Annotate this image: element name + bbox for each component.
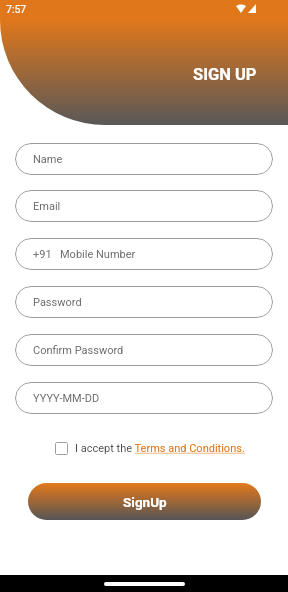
staticText: SignUp [123, 494, 167, 510]
button[interactable]: Accept terms checkbox [55, 442, 68, 455]
button[interactable]: Name [15, 143, 273, 175]
staticText: Password [33, 296, 82, 309]
staticText: +91 [33, 248, 52, 261]
button[interactable]: Email [15, 190, 273, 222]
staticText: Email [33, 200, 61, 213]
button[interactable]: Password [15, 286, 273, 318]
staticText: Mobile Number [60, 248, 136, 261]
staticText: 7:57 [6, 3, 27, 15]
button[interactable]: SignUp [28, 483, 261, 520]
button[interactable]: Confirm Password [15, 334, 273, 366]
staticText: SIGN UP [193, 65, 257, 84]
staticText: YYYY-MM-DD [33, 392, 100, 405]
staticText: Confirm Password [33, 344, 124, 357]
staticText: Name [33, 153, 63, 166]
button[interactable]: YYYY-MM-DD [15, 382, 273, 414]
button[interactable]: I accept the Terms and Conditions. [75, 442, 245, 455]
button[interactable]: +91 [15, 238, 273, 270]
